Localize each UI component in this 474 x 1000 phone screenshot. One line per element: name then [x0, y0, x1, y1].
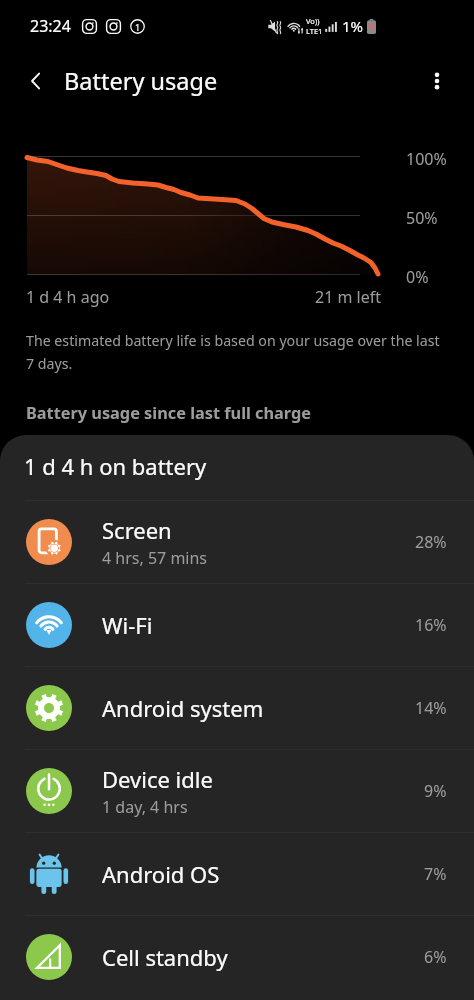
staticText: Android OS	[102, 859, 220, 889]
staticText: 1	[135, 21, 141, 33]
button[interactable]: Screen	[0, 501, 474, 583]
staticText: 0%	[406, 266, 429, 288]
staticText: 28%	[415, 531, 447, 553]
staticText: 16%	[415, 614, 447, 636]
staticText: 7 days.	[26, 354, 73, 373]
staticText: Device idle	[102, 764, 213, 794]
staticText: 7%	[424, 863, 447, 885]
staticText: 1 d 4 h on battery	[24, 451, 207, 481]
staticText: Android system	[102, 693, 264, 723]
staticText: Cell standby	[102, 942, 228, 972]
staticText: 21 m left	[315, 286, 382, 308]
staticText: LTE1	[306, 26, 323, 36]
staticText: Battery usage since last full charge	[26, 402, 311, 424]
staticText: 4 hrs, 57 mins	[102, 547, 208, 569]
staticText: 100%	[406, 148, 447, 170]
button[interactable]: Device idle	[0, 750, 474, 832]
staticText: 1%	[342, 16, 364, 36]
staticText: 1 day, 4 hrs	[102, 796, 188, 818]
staticText: Battery usage	[64, 65, 218, 97]
staticText: Screen	[102, 515, 172, 545]
button[interactable]: Navigate up	[14, 59, 58, 103]
button[interactable]: Cell standby	[0, 916, 474, 998]
staticText: Vo))	[306, 16, 320, 26]
staticText: 9%	[424, 780, 447, 802]
staticText: The estimated battery life is based on y…	[26, 331, 440, 350]
staticText: 1 d 4 h ago	[26, 286, 110, 308]
staticText: 14%	[415, 697, 447, 719]
staticText: 50%	[406, 207, 438, 229]
button[interactable]: More options	[415, 59, 459, 103]
staticText: 23:24	[30, 15, 71, 37]
staticText: 6%	[424, 946, 447, 968]
staticText: Wi-Fi	[102, 610, 153, 640]
button[interactable]: Android system	[0, 667, 474, 749]
button[interactable]: Android OS	[0, 833, 474, 915]
button[interactable]: Wi-Fi	[0, 584, 474, 666]
